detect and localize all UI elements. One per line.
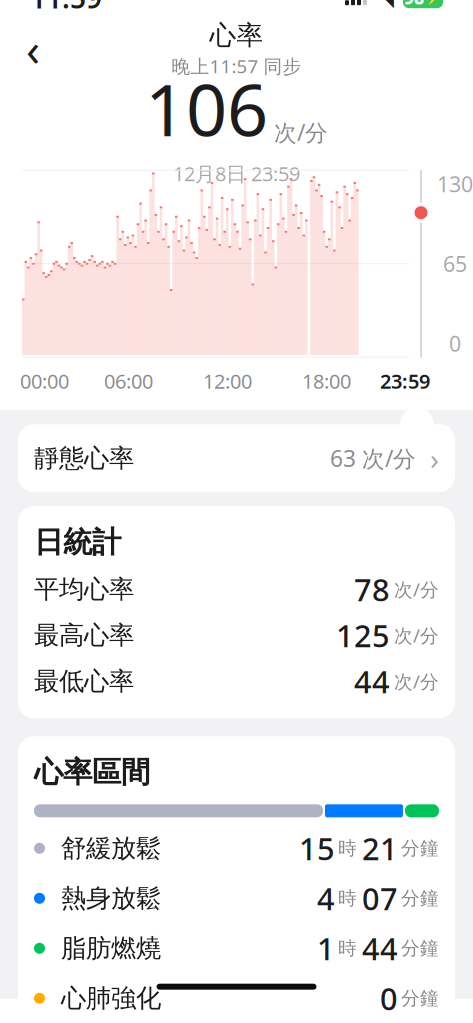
staticText: 15 (299, 828, 335, 869)
staticText: 12:00 (203, 368, 252, 394)
staticText: 次/分 (394, 669, 439, 694)
staticText: 心率 (209, 19, 263, 52)
staticText: 次/分 (394, 623, 439, 648)
staticText: 4 (317, 878, 335, 919)
staticText: 心率區間 (34, 754, 150, 790)
staticText: 分鐘 (401, 837, 439, 860)
staticText: 最高心率 (34, 620, 134, 651)
staticText: 125 (336, 615, 390, 656)
staticText: 00:00 (20, 368, 69, 394)
staticText: 0 (449, 329, 461, 358)
staticText: 最低心率 (34, 666, 134, 697)
staticText: 晚上11:57 同步 (171, 54, 301, 78)
staticText: 舒緩放鬆 (61, 833, 161, 864)
staticText: 44 (354, 661, 390, 702)
staticText: 130 (437, 170, 473, 198)
staticText: 18:00 (302, 368, 351, 394)
staticText: 65 (443, 249, 467, 278)
staticText: › (430, 439, 439, 478)
staticText: 06:00 (104, 368, 153, 394)
staticText: ◥ (376, 0, 393, 10)
staticText: 心肺強化 (61, 983, 161, 1014)
staticText: 63 次/分 (330, 443, 416, 473)
button[interactable]: 返回 (10, 26, 56, 72)
staticText: 日統計 (34, 524, 121, 560)
staticText: 12月8日 23:59 (173, 160, 300, 187)
staticText: 21 (362, 828, 398, 869)
staticText: 時 (338, 937, 357, 960)
staticText: 時 (338, 837, 357, 860)
staticText: 靜態心率 (34, 443, 134, 474)
staticText: 熱身放鬆 (61, 883, 161, 914)
staticText: 分鐘 (401, 937, 439, 960)
staticText: ‹ (26, 19, 40, 79)
staticText: 時 (338, 887, 357, 910)
staticText: 分鐘 (401, 987, 439, 1010)
button[interactable]: 靜態心率 (18, 424, 455, 492)
staticText: 78 (354, 569, 390, 610)
staticText: 1 (317, 928, 335, 969)
staticText: 98 (404, 0, 424, 9)
staticText: 0 (380, 978, 398, 1019)
staticText: 11:59 (30, 0, 102, 16)
staticText: 44 (362, 928, 398, 969)
staticText: ⚡ (425, 0, 442, 5)
staticText: 07 (362, 878, 398, 919)
staticText: 脂肪燃燒 (61, 933, 161, 964)
staticText: 23:59 (380, 368, 430, 394)
staticText: 次/分 (394, 577, 439, 602)
staticText: 平均心率 (34, 574, 134, 605)
staticText: 次/分 (274, 117, 328, 147)
staticText: 分鐘 (401, 887, 439, 910)
staticText: 106 (145, 61, 268, 156)
